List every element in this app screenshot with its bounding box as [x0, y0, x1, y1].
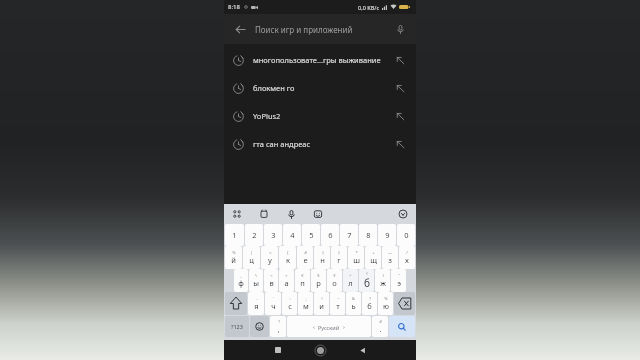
button[interactable]: ; — [298, 292, 313, 315]
button[interactable]: Emoji — [250, 316, 269, 337]
button[interactable]: * — [348, 246, 364, 269]
staticText: Русский — [318, 324, 340, 331]
button[interactable]: \ — [249, 269, 263, 292]
button[interactable]: Backspace — [394, 292, 415, 315]
button[interactable]: Shift — [225, 292, 247, 315]
staticText: ц — [249, 255, 254, 265]
button[interactable]: 8 — [359, 224, 377, 246]
button[interactable]: ( — [359, 269, 374, 292]
button[interactable]: YoPlus2 — [224, 102, 416, 130]
staticText: $ — [317, 273, 320, 278]
button[interactable]: Clipboard — [257, 207, 271, 221]
staticText: т — [336, 301, 340, 311]
button[interactable]: Stickers — [311, 207, 325, 221]
staticText: — — [388, 250, 392, 255]
button[interactable]: [ — [279, 246, 296, 269]
button[interactable]: € — [295, 269, 310, 292]
staticText: , — [277, 324, 280, 334]
button[interactable]: Insert query — [393, 109, 407, 123]
button[interactable]: ! — [314, 292, 329, 315]
button[interactable]: Back — [231, 20, 249, 38]
button[interactable]: { — [314, 246, 330, 269]
staticText: YoPlus2 — [253, 111, 387, 121]
button[interactable]: + — [365, 246, 381, 269]
button[interactable]: } — [331, 246, 347, 269]
staticText: > — [285, 273, 288, 278]
button[interactable]: % — [378, 292, 393, 315]
button[interactable]: Home — [307, 340, 333, 360]
button[interactable]: " — [391, 269, 406, 292]
button[interactable]: ? — [362, 292, 377, 315]
staticText: 1 — [232, 230, 237, 240]
button[interactable]: # — [297, 246, 313, 269]
button[interactable]: 7 — [340, 224, 358, 246]
staticText: я — [254, 301, 259, 311]
button[interactable]: 6 — [321, 224, 339, 246]
button[interactable]: ?123 — [225, 316, 249, 337]
staticText: [ — [287, 250, 289, 255]
button[interactable]: | — [243, 246, 260, 269]
button[interactable]: ‹ — [287, 316, 371, 337]
button[interactable]: Recents — [265, 340, 291, 360]
staticText: щ — [370, 255, 377, 265]
staticText: | — [250, 250, 253, 255]
button[interactable]: = — [261, 246, 278, 269]
staticText: ! — [321, 296, 323, 301]
button[interactable]: 9 — [378, 224, 396, 246]
staticText: ь — [351, 301, 356, 311]
staticText: ~ — [337, 296, 340, 301]
button[interactable]: < — [264, 269, 278, 292]
button[interactable]: ~ — [330, 292, 345, 315]
button[interactable]: 1 — [225, 224, 244, 246]
button[interactable]: Insert query — [393, 81, 407, 95]
staticText: у — [268, 255, 272, 265]
staticText: ‹ — [313, 323, 315, 331]
button[interactable]: $ — [311, 269, 326, 292]
button[interactable]: ^ — [343, 269, 358, 292]
button[interactable]: ' — [265, 292, 281, 315]
button[interactable]: Voice input — [284, 207, 298, 221]
staticText: г — [337, 255, 341, 265]
button[interactable]: Insert query — [393, 137, 407, 151]
staticText: 3 — [271, 230, 276, 240]
button[interactable]: — — [382, 246, 398, 269]
button[interactable]: - — [248, 292, 264, 315]
button[interactable]: 5 — [302, 224, 320, 246]
button[interactable]: Voice search — [391, 20, 409, 38]
staticText: = — [269, 250, 272, 255]
button[interactable]: ¥ — [327, 269, 342, 292]
staticText: € — [301, 273, 304, 278]
button[interactable]: 0 — [397, 224, 415, 246]
button[interactable]: Search — [389, 316, 415, 337]
button[interactable]: ) — [375, 269, 390, 292]
button[interactable]: блокмен го — [224, 74, 416, 102]
button[interactable]: 2 — [245, 224, 263, 246]
button[interactable]: : — [282, 292, 297, 315]
button[interactable]: Back — [349, 340, 375, 360]
button[interactable]: & — [346, 292, 361, 315]
staticText: ; — [305, 296, 307, 301]
button[interactable]: / — [399, 246, 415, 269]
button[interactable]: гта сан андреас — [224, 130, 416, 158]
button[interactable]: многопользовате...гры выживание — [224, 46, 416, 74]
button[interactable]: Apps — [230, 207, 244, 221]
button[interactable]: Insert query — [393, 53, 407, 67]
button[interactable]: _ — [234, 269, 248, 292]
button[interactable]: % — [225, 246, 242, 269]
staticText: ж — [380, 278, 386, 288]
staticText: 7 — [347, 230, 352, 240]
button[interactable]: More — [396, 207, 410, 221]
button[interactable]: 4 — [283, 224, 301, 246]
button[interactable]: > — [279, 269, 294, 292]
button[interactable]: ? — [270, 316, 286, 337]
button[interactable]: # — [372, 316, 388, 337]
staticText: к — [286, 255, 290, 265]
staticText: ? — [369, 296, 371, 301]
staticText: 2 — [252, 230, 257, 240]
staticText: а — [284, 278, 289, 288]
button[interactable]: 3 — [264, 224, 282, 246]
staticText: в — [269, 278, 274, 288]
staticText: б — [367, 301, 372, 311]
staticText: ч — [271, 301, 276, 311]
staticText: . — [379, 324, 382, 334]
